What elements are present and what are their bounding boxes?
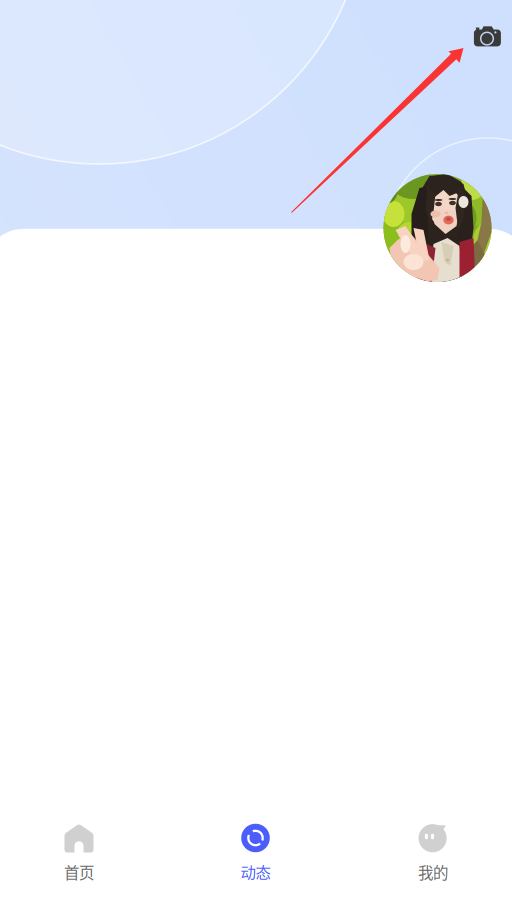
staticText: 我的 [418,861,448,883]
button[interactable]: Profile photo [383,174,491,282]
staticText: 首页 [64,861,94,883]
button[interactable]: 动态 [207,814,303,890]
button[interactable]: Camera [474,26,501,47]
button[interactable]: 我的 [385,814,481,890]
staticText: 动态 [240,861,270,883]
button[interactable]: 首页 [31,814,127,890]
